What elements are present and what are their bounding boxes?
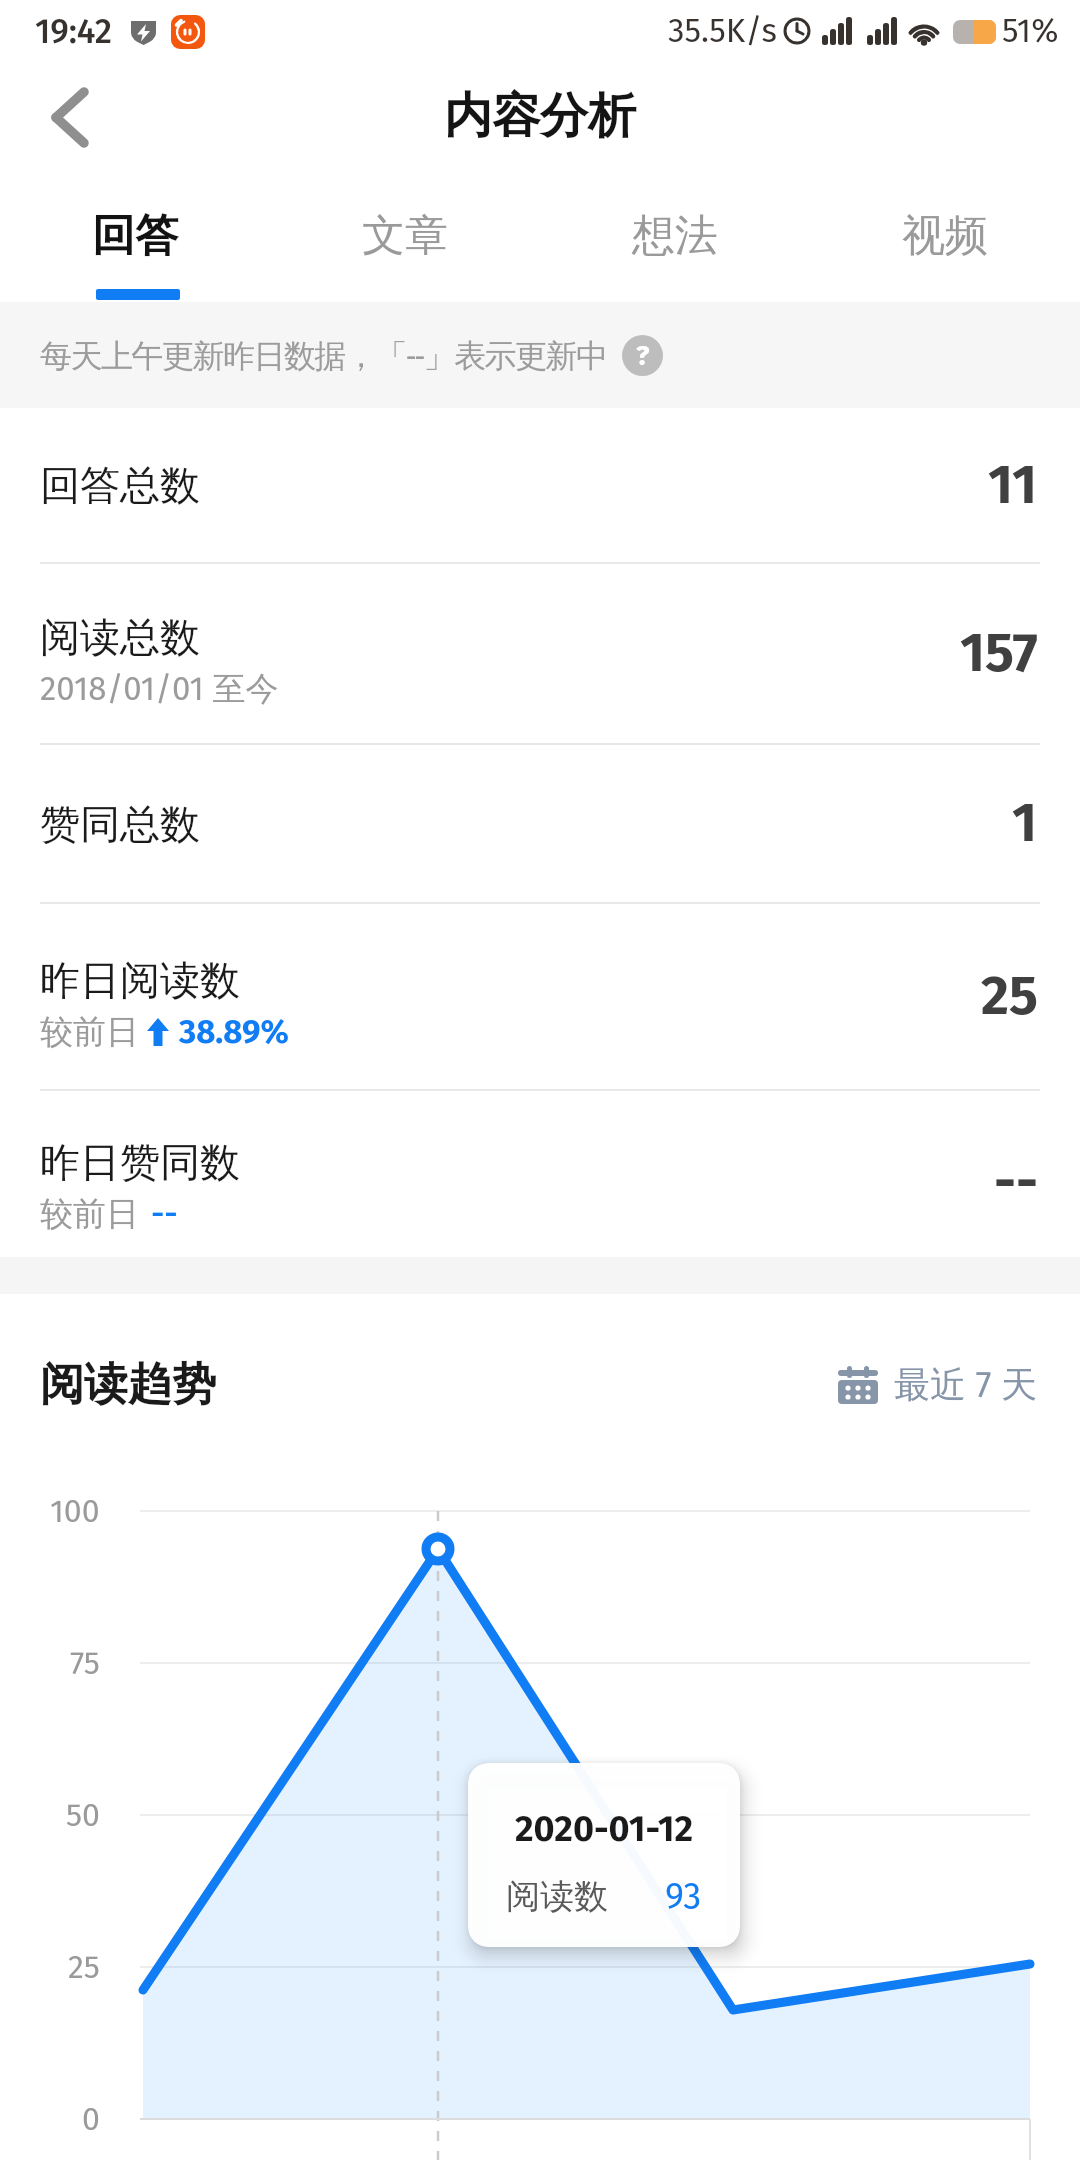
staticText: 昨日阅读数	[40, 955, 240, 1005]
staticText: 想法	[632, 209, 718, 263]
staticText: 昨日赞同数	[40, 1137, 240, 1187]
staticText: 1	[1012, 791, 1038, 856]
staticText: 50	[66, 1796, 100, 1834]
staticText: 0	[82, 2100, 100, 2138]
staticText: 100	[50, 1492, 100, 1530]
button[interactable]: 想法	[540, 170, 810, 302]
staticText: 回答总数	[40, 460, 200, 510]
staticText: 25	[981, 964, 1038, 1029]
staticText: 最近 7 天	[894, 1362, 1038, 1407]
staticText: 38.89%	[179, 1012, 289, 1052]
staticText: --	[151, 1194, 178, 1234]
staticText: 阅读趋势	[40, 1357, 216, 1412]
button[interactable]: 视频	[810, 170, 1080, 302]
staticText: 93	[665, 1875, 702, 1918]
staticText: 51%	[1002, 11, 1059, 51]
staticText: 阅读数	[506, 1875, 608, 1918]
staticText: 35.5K/s	[668, 11, 777, 51]
button[interactable]: 回答	[0, 170, 270, 302]
button[interactable]	[30, 72, 110, 160]
staticText: 赞同总数	[40, 799, 200, 849]
staticText: 文章	[362, 209, 448, 263]
button[interactable]: ?	[622, 335, 663, 376]
button[interactable]: 文章	[270, 170, 540, 302]
staticText: 每天上午更新昨日数据，「--」表示更新中	[40, 333, 607, 377]
staticText: 较前日	[40, 1011, 139, 1053]
staticText: 11	[988, 453, 1038, 518]
staticText: 25	[68, 1948, 100, 1986]
staticText: 视频	[902, 209, 988, 263]
staticText: 75	[70, 1644, 100, 1682]
staticText: ?	[636, 339, 650, 373]
staticText: 2018/01/01 至今	[40, 668, 279, 710]
staticText: --	[994, 1150, 1038, 1215]
staticText: 157	[960, 621, 1038, 686]
button[interactable]: 最近 7 天	[838, 1362, 1038, 1407]
staticText: 较前日	[40, 1193, 139, 1235]
staticText: 内容分析	[444, 86, 636, 146]
staticText: 回答	[92, 209, 178, 263]
staticText: 2020-01-12	[515, 1807, 694, 1850]
staticText: 阅读总数	[40, 612, 200, 662]
staticText: 19:42	[35, 11, 113, 52]
